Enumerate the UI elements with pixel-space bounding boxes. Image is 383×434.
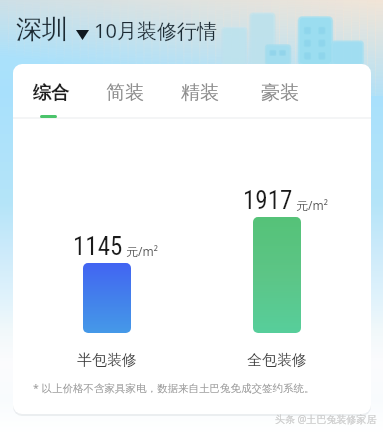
staticText: * 以上价格不含家具家电，数据来自土巴兔免成交签约系统。 bbox=[33, 381, 315, 395]
button[interactable]: 豪装 bbox=[253, 67, 307, 119]
button[interactable]: 半包装修 bbox=[83, 263, 131, 333]
other: Change city bbox=[76, 30, 89, 40]
staticText: 1917 bbox=[243, 186, 293, 215]
button[interactable]: 深圳 bbox=[16, 13, 89, 46]
staticText: 精装 bbox=[181, 81, 219, 105]
staticText: 10月装修行情 bbox=[94, 17, 217, 44]
staticText: 综合 bbox=[33, 82, 69, 105]
staticText: 元/m² bbox=[296, 197, 328, 213]
staticText: 元/m² bbox=[126, 243, 158, 259]
staticText: 半包装修 bbox=[77, 351, 137, 370]
button[interactable]: 综合 bbox=[24, 67, 78, 119]
staticText: 深圳 bbox=[16, 13, 68, 46]
button[interactable]: 精装 bbox=[173, 67, 227, 119]
staticText: 简装 bbox=[106, 81, 144, 105]
staticText: 全包装修 bbox=[247, 351, 307, 370]
button[interactable]: 简装 bbox=[98, 67, 152, 119]
staticText: 豪装 bbox=[261, 81, 299, 105]
staticText: 头条 @土巴兔装修家居 bbox=[275, 412, 377, 426]
staticText: 1145 bbox=[73, 232, 123, 261]
button[interactable]: 全包装修 bbox=[253, 217, 301, 333]
